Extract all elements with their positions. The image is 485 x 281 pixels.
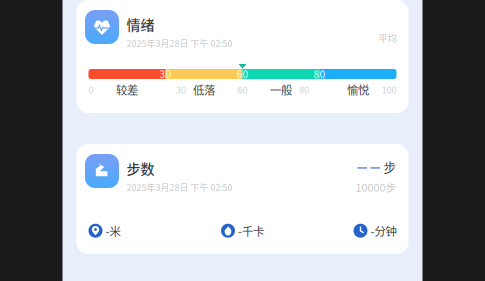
button[interactable]: 情绪	[76, 0, 408, 113]
button[interactable]: 步数	[76, 144, 408, 254]
staticText: 0	[88, 83, 93, 96]
staticText: -米	[105, 222, 120, 239]
staticText: 30	[176, 83, 186, 96]
staticText: 10000步	[355, 179, 396, 195]
staticText: -分钟	[370, 222, 396, 239]
staticText: 情绪	[126, 14, 154, 34]
staticText: 30	[159, 67, 171, 81]
staticText: 80	[313, 67, 325, 81]
staticText: 2025年3月28日 下午 02:50	[126, 181, 232, 193]
staticText: 100	[381, 83, 396, 96]
staticText: 步数	[126, 158, 154, 178]
staticText: -千卡	[238, 222, 264, 239]
staticText: 平均	[378, 31, 396, 44]
staticText: 60	[237, 83, 247, 96]
staticText: 一般	[270, 81, 292, 98]
staticText: 60	[236, 67, 248, 81]
staticText: 2025年3月28日 下午 02:50	[126, 37, 232, 49]
staticText: 愉悦	[347, 81, 369, 98]
staticText: －－	[355, 157, 381, 176]
staticText: 低落	[193, 81, 215, 98]
staticText: 步	[383, 157, 396, 176]
staticText: 较差	[116, 81, 138, 98]
staticText: 80	[299, 83, 309, 96]
